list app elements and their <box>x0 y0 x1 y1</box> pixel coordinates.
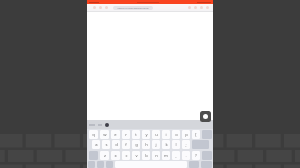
staticText: y <box>145 132 148 138</box>
staticText: Search or type website name <box>117 7 149 10</box>
button[interactable]: w <box>100 130 109 139</box>
button[interactable]: d <box>112 140 120 149</box>
button[interactable]: r <box>122 130 130 139</box>
staticText: n <box>155 153 158 159</box>
staticText: b <box>145 153 148 159</box>
button[interactable]: o <box>172 130 180 139</box>
button[interactable]: Action <box>188 6 191 9</box>
button[interactable]: c <box>122 151 130 160</box>
staticText: d <box>115 142 118 148</box>
staticText: c <box>125 153 128 159</box>
staticText: l <box>175 142 177 148</box>
staticText: . <box>185 153 187 159</box>
button[interactable]: b <box>142 151 150 160</box>
staticText: o <box>175 132 178 138</box>
button[interactable]: , <box>172 151 180 160</box>
button[interactable]: v <box>132 151 140 160</box>
button[interactable]: m <box>162 151 170 160</box>
staticText: f <box>125 142 127 148</box>
button[interactable]: q <box>89 130 98 139</box>
button[interactable]: s <box>102 140 110 149</box>
staticText: q <box>92 132 95 138</box>
staticText: e <box>114 132 117 138</box>
button[interactable]: Record <box>200 111 211 122</box>
button[interactable]: n <box>152 151 160 160</box>
staticText: h <box>145 142 148 148</box>
button[interactable]: e <box>111 130 120 139</box>
button[interactable]: Navigation <box>105 6 108 9</box>
button[interactable]: k <box>162 140 170 149</box>
button[interactable]: p <box>182 130 190 139</box>
staticText: z <box>104 153 106 159</box>
button[interactable]: Action <box>194 6 197 9</box>
button[interactable]: x <box>111 151 120 160</box>
button[interactable]: g <box>132 140 140 149</box>
staticText: a <box>95 142 98 148</box>
staticText: ? <box>195 153 197 159</box>
button[interactable]: Navigation <box>93 6 96 9</box>
staticText: w <box>103 132 107 138</box>
staticText: [ <box>195 132 197 138</box>
staticText: , <box>175 153 177 159</box>
button[interactable]: ; <box>182 140 190 149</box>
button[interactable]: y <box>142 130 150 139</box>
button[interactable]: t <box>132 130 140 139</box>
staticText: u <box>155 132 158 138</box>
button[interactable]: l <box>172 140 180 149</box>
staticText: v <box>135 153 138 159</box>
button[interactable]: Action <box>206 6 209 9</box>
button[interactable]: a <box>92 140 100 149</box>
button[interactable]: Emoji keyboard <box>105 123 109 127</box>
staticText: i <box>165 132 167 138</box>
button[interactable]: f <box>122 140 130 149</box>
button[interactable]: h <box>142 140 150 149</box>
staticText: g <box>135 142 138 148</box>
button[interactable]: Search or type website name <box>113 6 153 10</box>
button[interactable]: u <box>152 130 160 139</box>
staticText: p <box>185 132 188 138</box>
staticText: ; <box>185 142 187 148</box>
button[interactable]: [ <box>192 130 200 139</box>
button[interactable]: Navigation <box>99 6 102 9</box>
staticText: j <box>155 142 157 148</box>
button[interactable]: z <box>100 151 109 160</box>
staticText: t <box>135 132 137 138</box>
button[interactable]: ? <box>192 151 200 160</box>
button[interactable]: . <box>182 151 190 160</box>
button[interactable]: Action <box>200 6 203 9</box>
staticText: x <box>114 153 117 159</box>
staticText: m <box>164 153 168 159</box>
staticText: s <box>105 142 108 148</box>
button[interactable]: j <box>152 140 160 149</box>
staticText: r <box>125 132 127 138</box>
button[interactable]: i <box>162 130 170 139</box>
staticText: k <box>165 142 168 148</box>
